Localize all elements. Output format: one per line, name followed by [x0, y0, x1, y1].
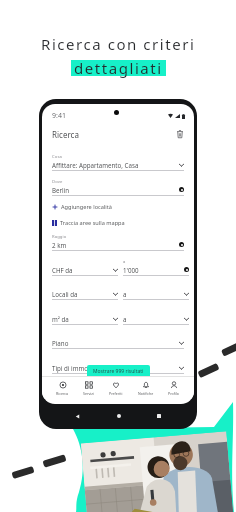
staticText: Affittare: Appartamento, Casa [52, 161, 139, 169]
button[interactable]: Aggiungere località [52, 202, 172, 211]
button[interactable]: a [123, 257, 189, 276]
staticText: a [123, 290, 127, 298]
staticText: Servizi [83, 391, 94, 396]
staticText: Ricerca [56, 391, 69, 396]
staticText: Ricerca con criteri [41, 34, 196, 54]
button[interactable]: Piano [52, 330, 184, 349]
staticText: Aggiungere località [61, 203, 112, 211]
button[interactable]: Cancella ricerca [174, 128, 186, 140]
staticText: Cosa [52, 154, 62, 160]
staticText: Raggio [52, 234, 67, 240]
button[interactable]: Raggio [52, 232, 184, 251]
staticText: m² da [52, 315, 69, 323]
button[interactable]: Preferiti [108, 381, 124, 396]
staticText: Piano [52, 339, 69, 347]
staticText: Dove [52, 179, 63, 185]
staticText: a [123, 259, 126, 265]
staticText: Mostrare 999 risultati [93, 368, 144, 375]
staticText: Ricerca [52, 129, 79, 140]
staticText: 2 km [52, 241, 67, 249]
staticText: dettagliati [74, 58, 163, 78]
staticText: CHF da [52, 266, 73, 274]
staticText: Locali da [52, 290, 78, 298]
staticText: a [123, 315, 127, 323]
staticText: Berlin [52, 186, 70, 194]
staticText: Traccia aree sulla mappa [60, 219, 125, 227]
staticText: 1'000 [123, 266, 139, 274]
button[interactable]: Dove [52, 177, 184, 196]
button[interactable]: Tipi di immobile [52, 355, 184, 374]
button[interactable]: m² da [52, 306, 118, 325]
button[interactable]: Mostrare 999 risultati [87, 365, 150, 378]
button[interactable]: Notifiche [137, 381, 155, 396]
staticText: 9:41 [52, 111, 66, 121]
button[interactable]: CHF da [52, 257, 118, 276]
button[interactable]: a [123, 281, 189, 300]
staticText: Preferiti [109, 391, 123, 396]
button[interactable]: a [123, 306, 189, 325]
button[interactable]: Cosa [52, 152, 184, 171]
button[interactable]: Locali da [52, 281, 118, 300]
staticText: Profilo [168, 391, 180, 396]
button[interactable]: Servizi [82, 381, 95, 396]
staticText: Notifiche [138, 391, 154, 396]
button[interactable]: Ricerca [55, 381, 70, 396]
button[interactable]: Profilo [167, 381, 181, 396]
button[interactable]: Traccia aree sulla mappa [52, 218, 172, 227]
staticText: Tipi di immobile [52, 364, 99, 372]
